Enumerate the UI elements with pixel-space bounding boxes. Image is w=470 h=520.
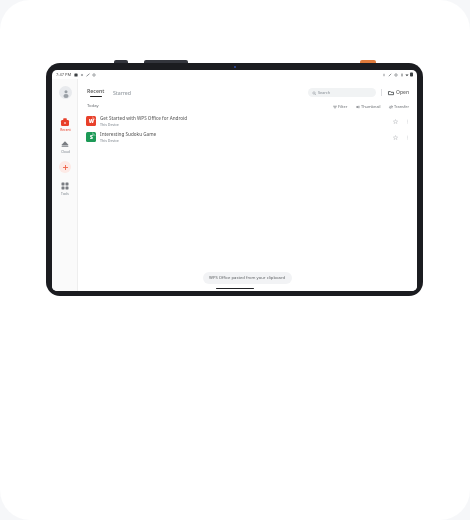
staticText: W <box>89 118 94 125</box>
button[interactable]: Transfer <box>388 103 411 110</box>
button[interactable]: Thumbnail <box>355 103 382 110</box>
staticText: Recent <box>60 128 71 132</box>
staticText: Open <box>396 89 410 96</box>
staticText: Today <box>87 103 99 109</box>
staticText: S <box>90 134 93 141</box>
button[interactable]: Tools <box>52 181 78 196</box>
staticText: This Device <box>100 122 119 127</box>
button[interactable]: Recent <box>87 87 105 97</box>
button[interactable]: More options <box>403 133 411 141</box>
staticText: This Device <box>100 138 119 143</box>
button[interactable]: Cloud <box>52 139 78 154</box>
staticText: Tools <box>61 192 69 196</box>
staticText: Interesting Sudoku Game <box>100 131 157 137</box>
button[interactable]: Filter <box>332 103 349 110</box>
button[interactable]: More options <box>403 117 411 125</box>
staticText: Filter <box>338 104 348 109</box>
button[interactable]: S <box>78 129 417 145</box>
button[interactable]: Account <box>59 86 72 99</box>
staticText: Cloud <box>61 150 70 154</box>
staticText: Transfer <box>394 104 410 109</box>
button[interactable]: Recent <box>52 117 78 132</box>
button[interactable]: New <box>59 161 71 173</box>
staticText: 7:47 PM <box>56 72 72 77</box>
staticText: Search <box>318 90 331 95</box>
button[interactable]: Star <box>391 133 399 141</box>
button[interactable]: Star <box>391 117 399 125</box>
button[interactable]: W <box>78 113 417 129</box>
button[interactable]: Starred <box>113 89 131 96</box>
staticText: Thumbnail <box>361 104 381 109</box>
button[interactable]: Open <box>387 88 411 97</box>
staticText: Starred <box>113 89 131 96</box>
staticText: WPS Office pasted from your clipboard <box>209 275 286 281</box>
staticText: Get Started with WPS Office for Android <box>100 115 188 121</box>
staticText: Recent <box>87 87 105 94</box>
button[interactable]: Search <box>308 88 376 97</box>
